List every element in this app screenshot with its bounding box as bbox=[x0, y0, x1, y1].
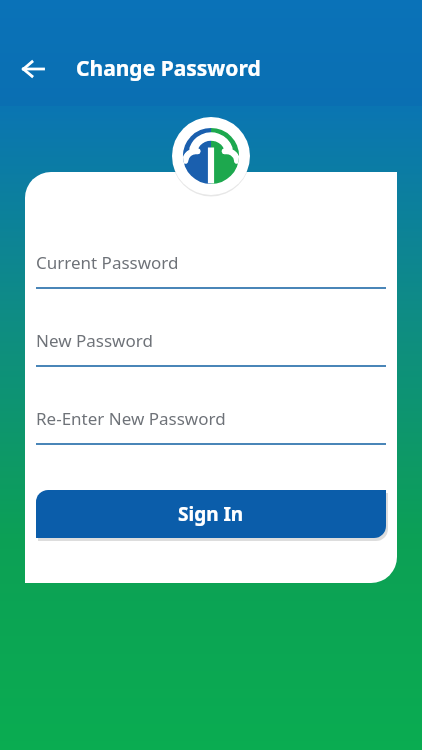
button[interactable]: Back bbox=[12, 48, 54, 90]
staticText: Change Password bbox=[76, 54, 261, 83]
staticText: New Password bbox=[36, 329, 153, 352]
button[interactable]: New Password bbox=[25, 324, 397, 372]
staticText: Re-Enter New Password bbox=[36, 407, 226, 430]
button[interactable]: Sign In bbox=[36, 490, 386, 538]
button[interactable]: Current Password bbox=[25, 246, 397, 294]
button[interactable]: Re-Enter New Password bbox=[25, 402, 397, 450]
staticText: Current Password bbox=[36, 251, 179, 274]
staticText: Sign In bbox=[178, 501, 244, 527]
